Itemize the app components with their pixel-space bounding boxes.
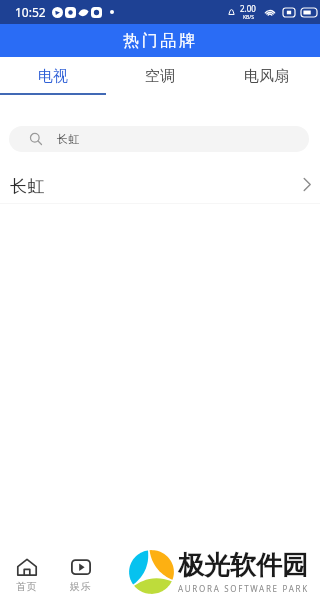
staticText: 极光软件园 bbox=[178, 549, 308, 582]
button[interactable]: 电风扇 bbox=[213, 57, 320, 95]
staticText: 电风扇 bbox=[244, 67, 289, 86]
button[interactable]: 空调 bbox=[106, 57, 213, 95]
button[interactable]: 长虹 bbox=[0, 165, 320, 203]
staticText: 电视 bbox=[38, 67, 68, 86]
other: Search bbox=[30, 133, 42, 145]
button[interactable]: 电视 bbox=[0, 57, 106, 95]
button[interactable]: 娱乐 bbox=[54, 532, 108, 600]
button[interactable]: 首页 bbox=[0, 532, 54, 600]
staticText: 首页 bbox=[16, 580, 38, 593]
staticText: 空调 bbox=[145, 67, 175, 86]
staticText: 娱乐 bbox=[70, 580, 92, 593]
staticText: 长虹 bbox=[10, 176, 45, 197]
other: Open brand bbox=[303, 178, 311, 191]
staticText: 10:52 bbox=[15, 4, 46, 20]
staticText: AURORA SOFTWARE PARK bbox=[178, 583, 309, 594]
button[interactable]: Search bbox=[9, 126, 309, 152]
staticText: KB/S bbox=[243, 14, 254, 21]
staticText: 长虹 bbox=[57, 132, 81, 146]
staticText: 热门品牌 bbox=[123, 31, 198, 51]
staticText: 2.00 bbox=[240, 3, 256, 14]
